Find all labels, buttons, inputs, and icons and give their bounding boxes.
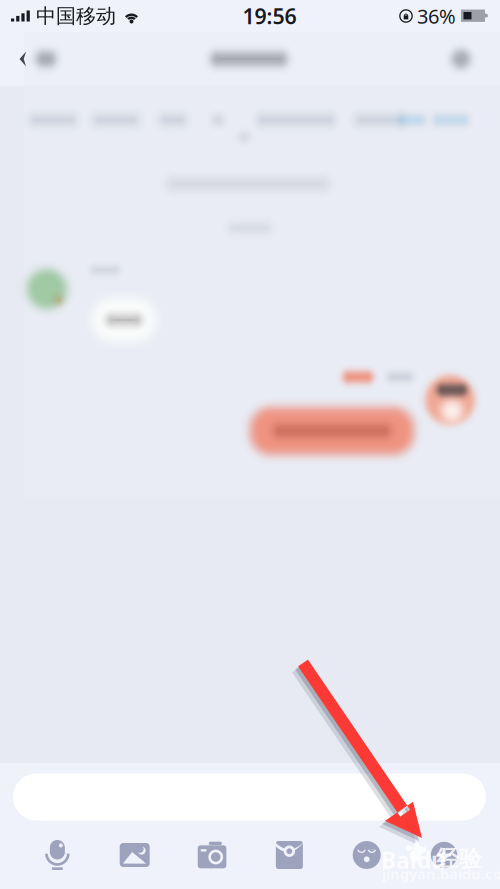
staticText: Bai <box>381 845 417 875</box>
staticText: du <box>417 845 446 875</box>
staticText: 19:56 <box>242 2 296 30</box>
button[interactable]: Message input field <box>13 773 486 820</box>
button[interactable]: Hold to talk <box>19 832 96 878</box>
button[interactable]: More <box>405 832 483 878</box>
staticText: 中国移动 <box>36 4 116 28</box>
button[interactable]: Chat settings <box>436 37 486 81</box>
button[interactable]: Camera <box>173 832 251 878</box>
staticText: 经验 <box>436 845 482 873</box>
staticText: 36% <box>417 3 456 29</box>
button[interactable]: Red packet <box>251 832 328 878</box>
staticText: jingyan.baidu.com <box>382 864 500 883</box>
button[interactable]: Back <box>18 37 74 81</box>
button[interactable]: Photos <box>96 832 173 878</box>
button[interactable]: Stickers <box>328 832 405 878</box>
button[interactable]: Chat title <box>189 37 309 81</box>
